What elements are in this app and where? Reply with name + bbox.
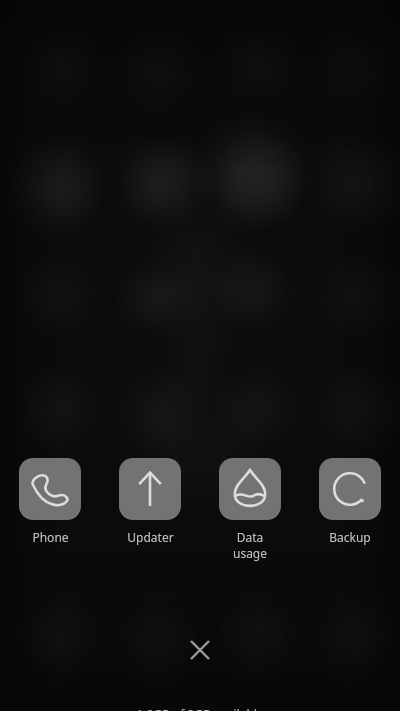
staticText: 1.8GB of 3GB available — [136, 706, 264, 711]
button[interactable]: Phone — [19, 458, 81, 545]
staticText: Updater — [127, 529, 174, 545]
staticText: Backup — [329, 529, 371, 545]
button[interactable]: Backup — [319, 458, 381, 545]
staticText: Phone — [32, 529, 69, 545]
staticText: Data usage — [219, 529, 281, 561]
button[interactable]: Data usage — [219, 458, 281, 561]
button[interactable]: Updater — [119, 458, 181, 545]
button[interactable]: Close — [178, 628, 222, 672]
